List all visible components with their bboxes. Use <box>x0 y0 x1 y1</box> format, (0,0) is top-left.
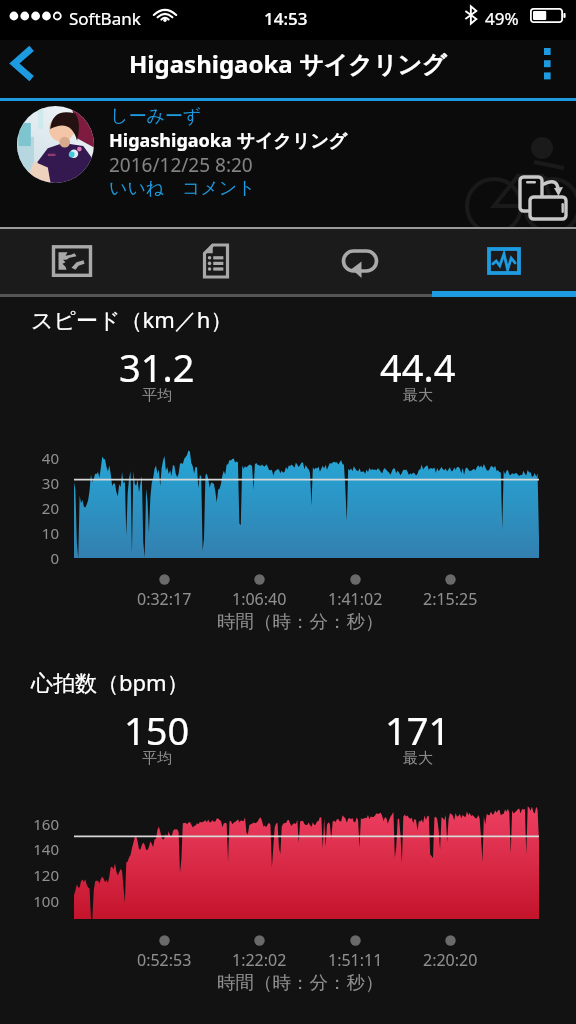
staticText: 160 <box>33 814 59 834</box>
staticText: 1:06:40 <box>232 588 287 608</box>
button[interactable]: Details <box>144 229 288 294</box>
staticText: 2:15:25 <box>423 588 478 608</box>
button[interactable]: いいね <box>109 177 165 200</box>
staticText: 平均 <box>142 749 172 768</box>
button[interactable]: Back <box>0 40 54 98</box>
staticText: 14:53 <box>264 7 308 30</box>
staticText: 10 <box>41 523 59 543</box>
staticText: 150 <box>124 704 190 756</box>
staticText: 0 <box>50 548 59 568</box>
staticText: 最大 <box>403 386 433 405</box>
staticText: 171 <box>385 704 451 756</box>
staticText: 120 <box>33 865 59 885</box>
staticText: 100 <box>33 891 59 911</box>
staticText: 49% <box>485 7 519 30</box>
staticText: SoftBank <box>69 7 141 30</box>
staticText: 40 <box>41 448 59 468</box>
staticText: 心拍数（bpm） <box>31 667 189 697</box>
staticText: 平均 <box>142 386 172 405</box>
button[interactable]: しーみーず <box>110 105 202 128</box>
staticText: 20 <box>41 498 59 518</box>
staticText: 1:51:11 <box>328 949 383 969</box>
staticText: 2:20:20 <box>423 949 478 969</box>
button[interactable]: Map <box>0 229 144 294</box>
button[interactable]: Rotate device <box>512 171 570 221</box>
staticText: 140 <box>33 839 59 859</box>
staticText: 31.2 <box>119 341 195 393</box>
staticText: 2016/12/25 8:20 <box>109 152 253 178</box>
staticText: 30 <box>41 473 59 493</box>
button[interactable]: コメント <box>182 177 256 200</box>
staticText: 44.4 <box>380 341 456 393</box>
staticText: スピード（km／h） <box>31 304 233 334</box>
staticText: 時間（時：分：秒） <box>217 610 384 632</box>
button[interactable]: Laps <box>288 229 432 294</box>
button[interactable]: More options <box>522 40 576 98</box>
staticText: 最大 <box>403 749 433 768</box>
staticText: 時間（時：分：秒） <box>217 971 384 993</box>
staticText: Higashigaoka サイクリング <box>129 47 447 80</box>
staticText: 0:52:53 <box>137 949 192 969</box>
staticText: 0:32:17 <box>137 588 192 608</box>
staticText: 1:22:02 <box>232 949 287 969</box>
staticText: 1:41:02 <box>328 588 383 608</box>
staticText: Higashigaoka サイクリング <box>109 128 347 153</box>
button[interactable]: Profile photo <box>17 106 94 183</box>
button[interactable]: Charts <box>432 229 576 294</box>
